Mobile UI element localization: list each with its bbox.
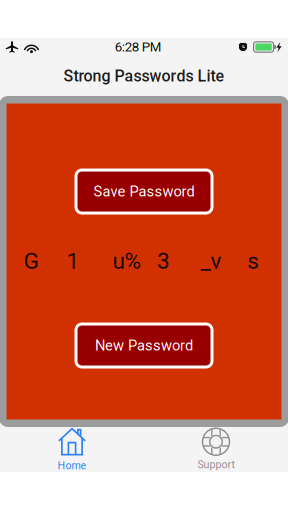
staticText: u% <box>112 248 141 274</box>
staticText: 1 <box>66 248 79 274</box>
staticText: 6:28 PM <box>115 39 162 55</box>
staticText: Strong Passwords Lite <box>63 67 224 85</box>
button[interactable]: New Password <box>74 322 213 369</box>
button[interactable]: Support <box>144 427 288 472</box>
staticText: Save Password <box>93 183 194 200</box>
staticText: G <box>23 248 38 274</box>
button[interactable]: Save Password <box>74 168 213 215</box>
button[interactable]: Home <box>0 427 144 472</box>
staticText: s <box>247 248 259 274</box>
staticText: Support <box>197 458 234 471</box>
staticText: 3 <box>157 248 170 274</box>
staticText: _v <box>200 248 221 274</box>
staticText: New Password <box>95 337 193 354</box>
staticText: Home <box>57 459 86 472</box>
